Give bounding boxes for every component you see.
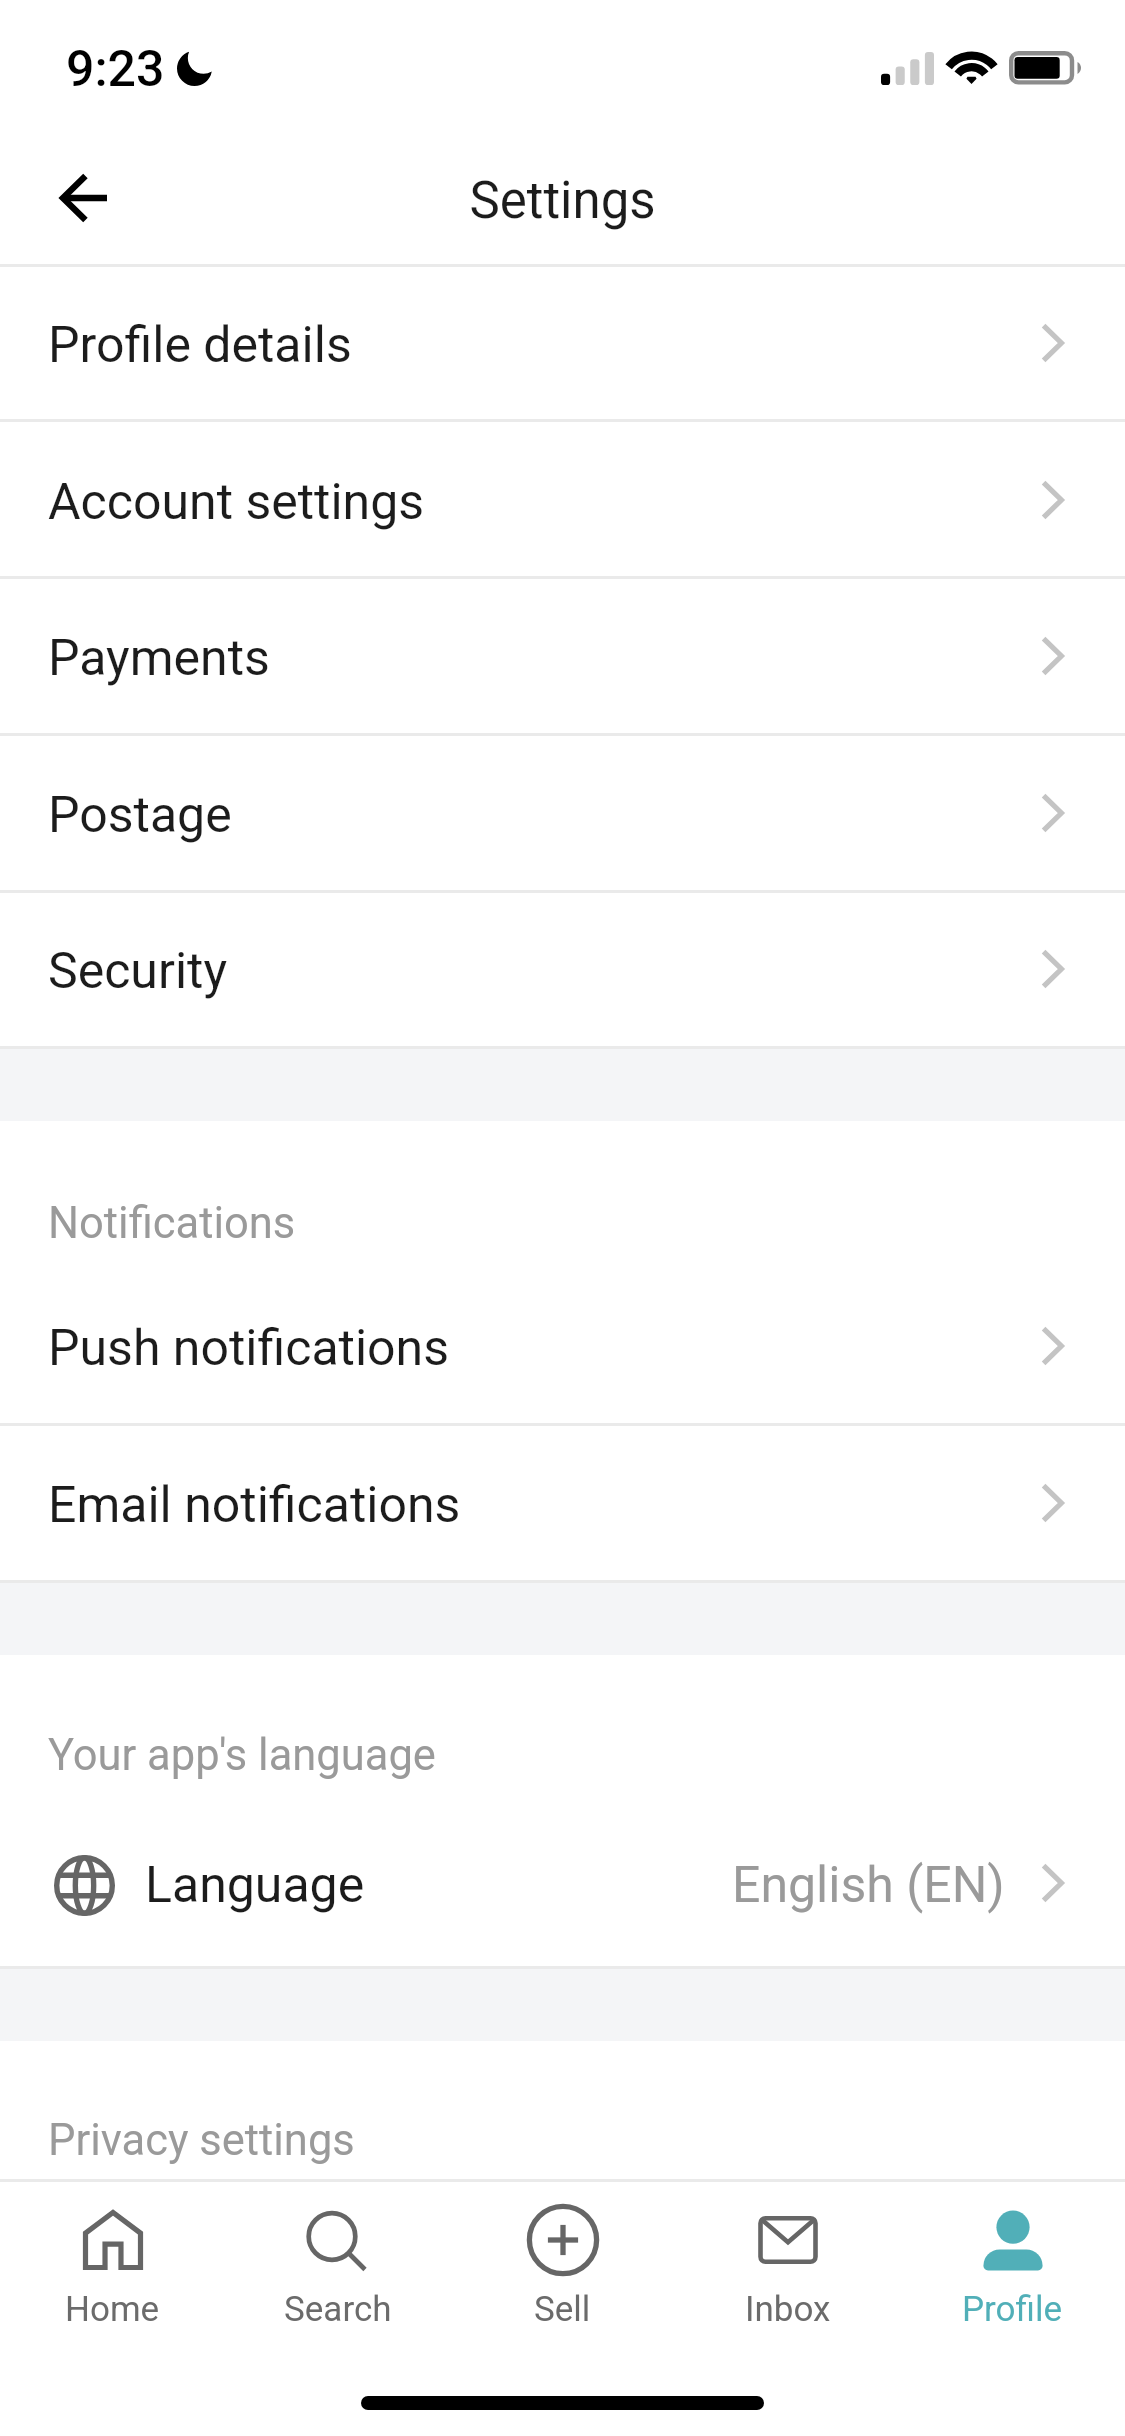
staticText: Notifications [48,1198,296,1249]
staticText: Payments [48,629,270,688]
button[interactable]: Payments [0,577,1125,734]
button[interactable]: Language [0,1807,1125,1964]
button[interactable]: Back [36,132,132,264]
button[interactable]: Account settings [0,421,1125,578]
staticText: English (EN) [732,1856,1005,1915]
button[interactable]: Postage [0,734,1125,891]
button[interactable]: Push notifications [0,1267,1125,1424]
staticText: Profile details [48,316,352,375]
staticText: Home [65,2289,160,2330]
staticText: Search [284,2289,392,2330]
staticText: Your app's language [48,1730,436,1781]
button[interactable]: Security [0,890,1125,1047]
button[interactable]: Inbox [675,2182,900,2352]
staticText: Settings [0,171,1125,231]
button[interactable]: Sell [450,2182,675,2352]
staticText: Inbox [745,2289,831,2330]
staticText: Profile [962,2289,1063,2330]
staticText: Push notifications [48,1319,450,1378]
staticText: Postage [48,786,232,845]
staticText: 9:23 [66,40,165,99]
button[interactable]: Profile [900,2182,1125,2352]
staticText: Language [145,1856,365,1915]
staticText: Account settings [48,473,425,532]
staticText: Security [48,942,228,1001]
button[interactable]: Profile details [0,264,1125,421]
button[interactable]: Search [225,2182,450,2352]
staticText: Privacy settings [48,2115,355,2166]
staticText: Sell [534,2289,591,2330]
button[interactable]: Email notifications [0,1424,1125,1581]
staticText: Email notifications [48,1476,461,1535]
button[interactable]: Home [0,2182,225,2352]
